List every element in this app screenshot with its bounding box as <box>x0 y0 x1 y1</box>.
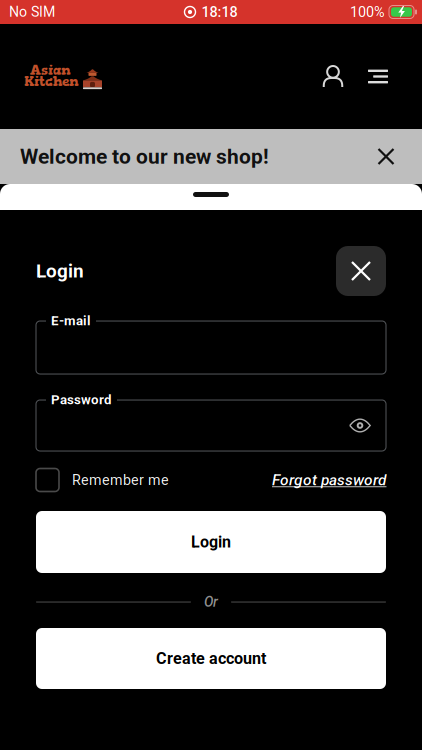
staticText: Asian <box>30 62 71 78</box>
staticText: Login <box>36 260 84 282</box>
button[interactable]: Account <box>314 54 352 98</box>
staticText: 100% <box>350 4 385 20</box>
staticText: Remember me <box>72 472 169 488</box>
staticText: Or <box>204 594 218 610</box>
staticText: Create account <box>156 649 266 668</box>
button[interactable]: Dismiss announcement <box>370 140 402 172</box>
staticText: Password <box>51 392 112 408</box>
staticText: E-mail <box>51 313 91 329</box>
staticText: Login <box>191 533 231 551</box>
button[interactable]: Create account <box>36 628 386 689</box>
button[interactable]: Show password <box>343 408 377 442</box>
button[interactable]: Login <box>36 511 386 573</box>
staticText: Welcome to our new shop! <box>20 144 269 169</box>
button[interactable]: Menu <box>359 54 397 98</box>
button[interactable]: Remember me <box>36 468 169 491</box>
button[interactable]: Forgot password <box>272 471 386 489</box>
button[interactable]: Close login <box>336 246 386 296</box>
staticText: Kitchen <box>24 73 79 89</box>
staticText: 18:18 <box>201 4 237 20</box>
staticText: No SIM <box>9 4 55 20</box>
staticText: Forgot password <box>272 471 386 489</box>
